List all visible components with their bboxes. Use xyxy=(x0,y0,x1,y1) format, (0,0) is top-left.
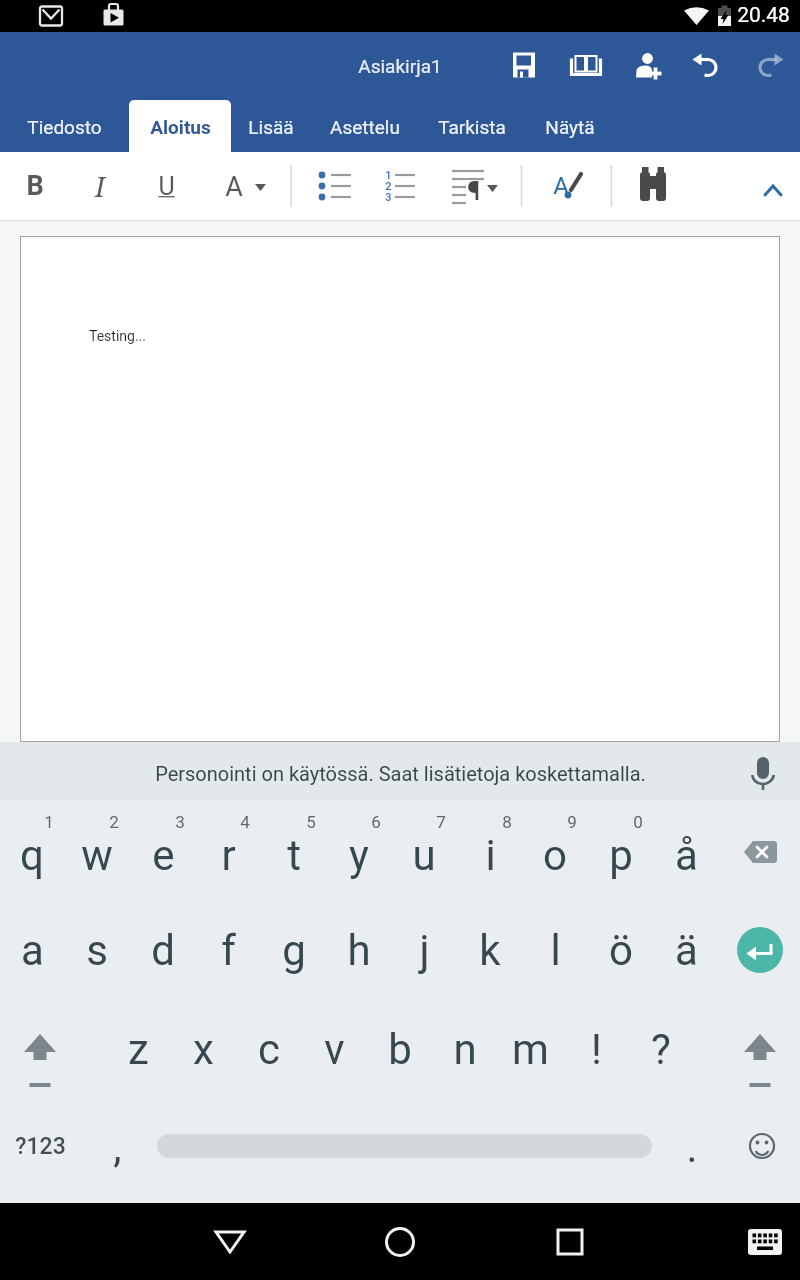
staticText: u xyxy=(412,831,436,880)
staticText: h xyxy=(347,926,371,975)
staticText: A xyxy=(225,171,243,203)
staticText: 6 xyxy=(371,812,381,832)
staticText: l xyxy=(550,926,561,975)
staticText: 4 xyxy=(240,812,250,832)
staticText: s xyxy=(86,926,108,975)
staticText: 2 xyxy=(385,180,392,193)
staticText: Tarkista xyxy=(438,116,506,138)
staticText: r xyxy=(221,831,236,880)
staticText: Asettelu xyxy=(330,116,400,138)
staticText: Personointi on käytössä. Saat lisätietoj… xyxy=(155,762,646,785)
staticText: x xyxy=(193,1025,214,1074)
staticText: U xyxy=(158,172,175,201)
staticText: a xyxy=(21,926,44,975)
staticText: I xyxy=(95,168,105,205)
staticText: f xyxy=(221,926,236,975)
staticText: ö xyxy=(609,926,633,975)
staticText: c xyxy=(258,1025,280,1074)
staticText: 3 xyxy=(385,191,392,204)
staticText: 0 xyxy=(633,812,643,832)
staticText: B xyxy=(26,170,44,202)
staticText: å xyxy=(675,831,698,880)
staticText: t xyxy=(287,831,301,880)
staticText: d xyxy=(151,926,175,975)
staticText: Lisää xyxy=(248,116,294,138)
staticText: b xyxy=(388,1025,412,1074)
staticText: 3 xyxy=(175,812,185,832)
staticText: ? xyxy=(651,1025,671,1074)
staticText: Näytä xyxy=(545,116,595,138)
staticText: ¶ xyxy=(467,176,480,206)
staticText: 5 xyxy=(306,812,316,832)
staticText: n xyxy=(453,1025,477,1074)
staticText: Tiedosto xyxy=(27,116,102,138)
staticText: e xyxy=(152,831,175,880)
staticText: 7 xyxy=(436,812,446,832)
staticText: p xyxy=(609,831,633,880)
staticText: Aloitus xyxy=(150,116,211,138)
staticText: , xyxy=(113,1123,122,1172)
staticText: Asiakirja1 xyxy=(358,55,442,77)
staticText: 9 xyxy=(567,812,577,832)
staticText: i xyxy=(485,831,496,880)
staticText: q xyxy=(20,831,44,880)
staticText: ?123 xyxy=(15,1133,66,1160)
staticText: j xyxy=(419,926,430,975)
staticText: m xyxy=(512,1025,549,1074)
staticText: 2 xyxy=(109,812,119,832)
staticText: 1 xyxy=(385,169,392,182)
staticText: ! xyxy=(591,1025,602,1074)
staticText: z xyxy=(128,1025,149,1074)
staticText: w xyxy=(81,831,113,880)
staticText: 20.48 xyxy=(737,3,790,28)
staticText: ä xyxy=(675,926,698,975)
staticText: . xyxy=(686,1123,698,1172)
staticText: k xyxy=(479,926,501,975)
staticText: 1 xyxy=(44,812,54,832)
staticText: Testing... xyxy=(89,328,146,344)
staticText: o xyxy=(543,831,567,880)
staticText: 8 xyxy=(502,812,512,832)
staticText: A xyxy=(553,172,569,200)
staticText: g xyxy=(282,926,306,975)
staticText: y xyxy=(349,831,369,880)
staticText: v xyxy=(324,1025,345,1074)
